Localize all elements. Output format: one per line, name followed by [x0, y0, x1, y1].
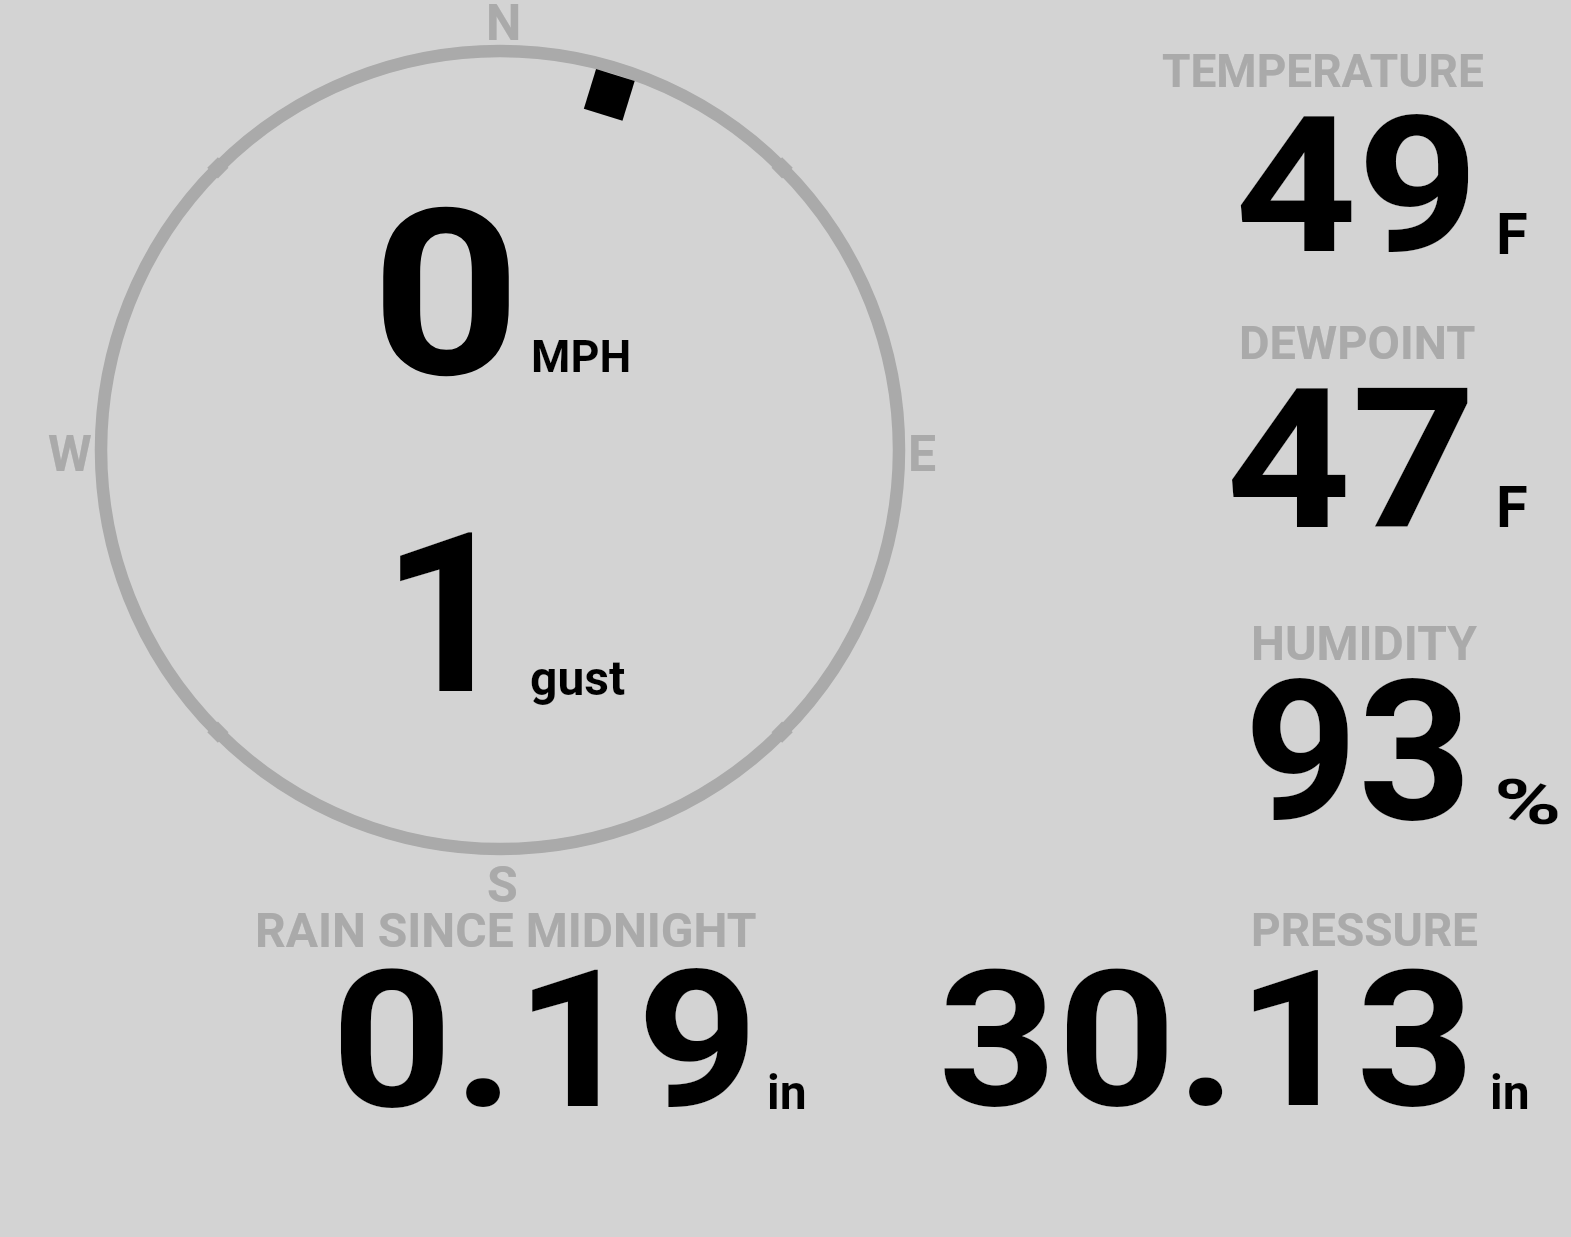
- button[interactable]: Rain since midnight 0.19 in: [240, 890, 840, 1130]
- staticText: W: [48, 425, 92, 484]
- staticText: %: [1494, 766, 1562, 840]
- staticText: F: [1496, 473, 1528, 541]
- staticText: F: [1496, 200, 1528, 268]
- staticText: E: [908, 425, 937, 484]
- staticText: gust: [530, 650, 626, 706]
- staticText: S: [487, 856, 518, 915]
- staticText: 1: [381, 484, 515, 745]
- staticText: MPH: [531, 330, 632, 383]
- staticText: RAIN SINCE MIDNIGHT: [255, 902, 757, 958]
- button[interactable]: Pressure 30.13 in: [900, 890, 1560, 1130]
- staticText: TEMPERATURE: [1162, 44, 1484, 98]
- staticText: DEWPOINT: [1239, 315, 1476, 370]
- staticText: 49: [1235, 76, 1479, 297]
- staticText: 0.19: [331, 928, 759, 1153]
- button[interactable]: Temperature 49 F: [1130, 30, 1560, 280]
- staticText: 93: [1244, 638, 1472, 867]
- staticText: N: [486, 0, 522, 53]
- staticText: in: [767, 1064, 807, 1120]
- staticText: in: [1490, 1064, 1530, 1120]
- button[interactable]: Dewpoint 47 F: [1130, 300, 1560, 550]
- staticText: 0: [371, 159, 522, 431]
- staticText: 47: [1226, 346, 1477, 575]
- staticText: HUMIDITY: [1251, 615, 1477, 671]
- staticText: 30.13: [938, 929, 1476, 1152]
- button[interactable]: Humidity 93 percent: [1130, 600, 1560, 850]
- button[interactable]: Wind speed and direction: [80, 30, 920, 870]
- staticText: PRESSURE: [1251, 903, 1478, 957]
